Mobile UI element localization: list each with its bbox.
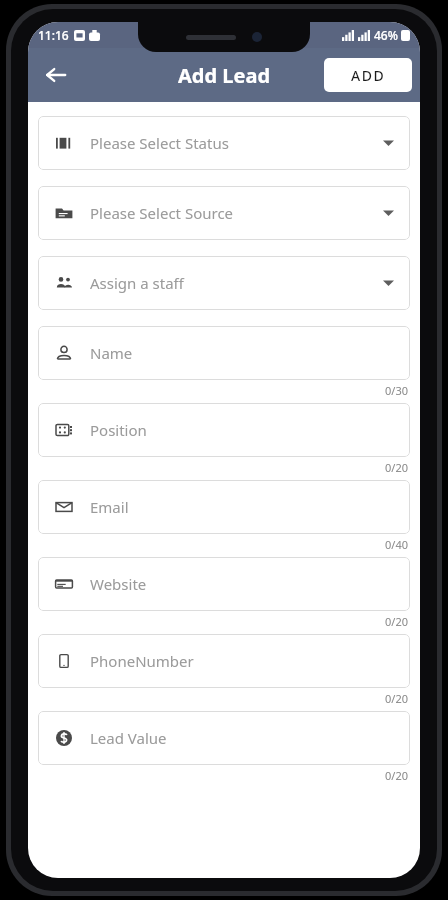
button[interactable]: Email xyxy=(38,480,410,534)
button[interactable]: Assign a staff xyxy=(38,256,410,310)
staticText: Position xyxy=(90,420,147,440)
staticText: ADD xyxy=(351,66,386,85)
staticText: Name xyxy=(90,343,133,363)
button[interactable]: PhoneNumber xyxy=(38,634,410,688)
staticText: 0/20 xyxy=(385,691,408,706)
button[interactable]: Back xyxy=(34,53,78,97)
button[interactable]: Name xyxy=(38,326,410,380)
button[interactable]: ADD xyxy=(324,58,412,92)
staticText: Add Lead xyxy=(178,62,271,89)
staticText: 0/40 xyxy=(385,537,408,552)
staticText: 0/20 xyxy=(385,614,408,629)
staticText: Lead Value xyxy=(90,728,167,748)
staticText: 0/20 xyxy=(385,460,408,475)
button[interactable]: Please Select Status xyxy=(38,116,410,170)
staticText: Email xyxy=(90,497,129,517)
button[interactable]: Website xyxy=(38,557,410,611)
staticText: Website xyxy=(90,574,147,594)
staticText: Assign a staff xyxy=(90,273,184,293)
button[interactable]: Please Select Source xyxy=(38,186,410,240)
staticText: 0/20 xyxy=(385,768,408,783)
staticText: 0/30 xyxy=(385,383,408,398)
staticText: 11:16 xyxy=(38,27,69,43)
staticText: PhoneNumber xyxy=(90,651,194,671)
staticText: Please Select Source xyxy=(90,203,234,223)
staticText: Please Select Status xyxy=(90,133,229,153)
button[interactable]: Lead Value xyxy=(38,711,410,765)
button[interactable]: Position xyxy=(38,403,410,457)
staticText: 46% xyxy=(374,27,398,43)
